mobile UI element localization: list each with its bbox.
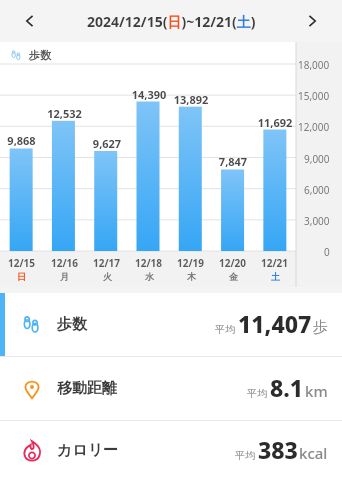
staticText: 水: [145, 271, 154, 282]
staticText: 歩数: [57, 315, 87, 334]
staticText: 12/17: [93, 256, 121, 270]
staticText: 15,000: [298, 89, 330, 103]
staticText: 12/19: [177, 256, 205, 270]
staticText: kcal: [299, 443, 328, 463]
staticText: 9,868: [0, 133, 43, 148]
staticText: 土: [271, 271, 280, 282]
staticText: 8.1: [270, 372, 304, 403]
button[interactable]: カロリー: [0, 421, 342, 480]
staticText: 11,407: [238, 308, 312, 339]
staticText: 平均: [215, 323, 235, 336]
staticText: 13,892: [170, 92, 212, 107]
button[interactable]: 歩数: [0, 293, 342, 356]
button[interactable]: 移動距離: [0, 357, 342, 420]
staticText: 11,692: [254, 115, 296, 130]
staticText: 平均: [235, 449, 255, 462]
staticText: 移動距離: [57, 379, 117, 398]
staticText: 歩数: [29, 48, 51, 62]
staticText: 木: [187, 271, 196, 282]
staticText: 383: [258, 434, 298, 465]
staticText: 月: [60, 271, 69, 282]
staticText: 火: [103, 271, 112, 282]
staticText: 3,000: [304, 214, 330, 228]
staticText: 金: [229, 271, 238, 282]
staticText: 12/15: [8, 256, 36, 270]
staticText: 平均: [247, 387, 267, 400]
staticText: 2024/12/15(日)~12/21(土): [87, 12, 256, 31]
staticText: 歩: [313, 318, 328, 337]
staticText: 12,000: [298, 120, 330, 134]
staticText: 12/16: [51, 256, 79, 270]
staticText: 18,000: [298, 58, 330, 72]
staticText: 9,627: [86, 136, 128, 151]
staticText: 12/20: [219, 256, 247, 270]
button[interactable]: Previous week: [8, 0, 52, 42]
button[interactable]: Next week: [290, 0, 334, 42]
staticText: 12/21: [261, 256, 289, 270]
staticText: 6,000: [304, 183, 330, 197]
staticText: 7,847: [212, 154, 254, 169]
staticText: 12/18: [135, 256, 163, 270]
staticText: km: [305, 381, 328, 401]
staticText: カロリー: [57, 441, 119, 460]
staticText: 9,000: [304, 152, 330, 166]
staticText: 14,390: [128, 87, 170, 102]
staticText: 12,532: [43, 106, 86, 121]
staticText: 0: [324, 245, 330, 259]
staticText: 日: [17, 271, 26, 282]
